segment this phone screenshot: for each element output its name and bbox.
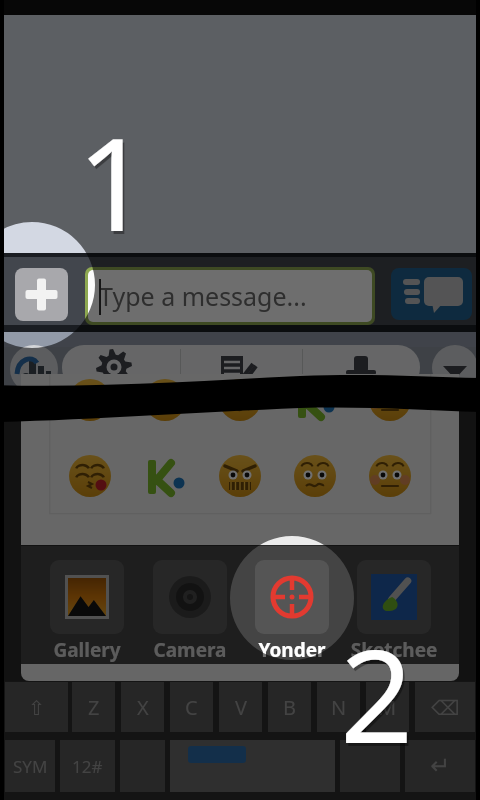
staticText: 1 [79,97,153,271]
button[interactable]: X [121,682,164,732]
button[interactable]: Add attachment [15,268,68,321]
staticText: X [137,694,149,721]
staticText: Gallery [37,637,137,663]
button[interactable]: Conversations [391,268,472,320]
staticText: C [185,694,198,721]
staticText: ⌫ [431,696,460,719]
button[interactable]: Space [170,740,335,792]
button[interactable]: Enter [405,740,475,792]
button[interactable]: C [170,682,213,732]
staticText: Sketchee [344,637,444,663]
button[interactable]: B [268,682,311,732]
button[interactable] [340,740,400,792]
button[interactable]: Settings [95,348,133,386]
button[interactable]: Yonder [242,560,342,634]
staticText: 2 [342,609,416,783]
button[interactable]: N [317,682,360,732]
staticText: 12# [72,755,103,778]
button[interactable]: 12# [60,740,115,792]
staticText: 1 [77,94,151,268]
staticText: ⇧ [28,696,45,719]
button[interactable]: Notes [215,348,259,392]
staticText: B [283,694,296,721]
button[interactable]: Camera [140,560,240,634]
button[interactable]: ⌫ [415,682,475,732]
staticText: Type a message... [99,279,307,313]
button[interactable]: V [219,682,262,732]
staticText: M [378,694,397,721]
staticText: 2 [340,606,414,780]
staticText: Z [88,694,100,721]
staticText: SYM [13,755,48,778]
staticText: N [331,694,347,721]
button[interactable]: Type a message... [88,270,372,322]
button[interactable]: M [366,682,409,732]
button[interactable]: Sketchee [344,560,444,634]
staticText: Camera [140,637,240,663]
button[interactable]: SYM [5,740,55,792]
button[interactable]: Gallery [37,560,137,634]
button[interactable]: App [10,345,58,393]
button[interactable]: More [432,345,478,391]
staticText: ↵ [430,752,451,780]
button[interactable]: Profile [342,348,380,386]
staticText: Yonder [242,637,342,663]
staticText: V [235,694,247,721]
button[interactable]: Z [72,682,115,732]
